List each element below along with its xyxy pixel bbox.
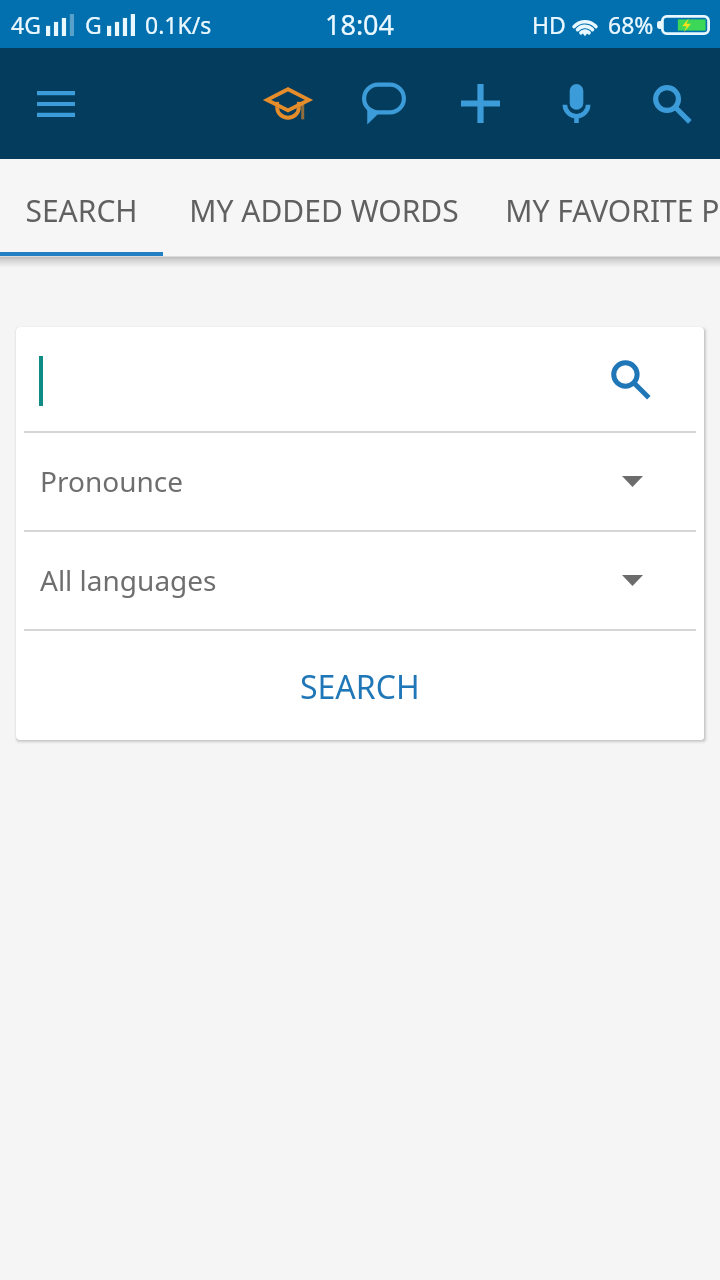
button[interactable]: SEARCH: [0, 159, 163, 256]
staticText: SEARCH: [300, 665, 420, 709]
staticText: MY FAVORITE PRONUNCIATIONS: [505, 190, 720, 231]
staticText: 68%: [608, 9, 654, 40]
button[interactable]: Add word: [432, 48, 528, 159]
button[interactable]: Voice search: [528, 48, 624, 159]
staticText: All languages: [40, 561, 217, 599]
button[interactable]: Messages: [336, 48, 432, 159]
staticText: Pronounce: [40, 462, 183, 500]
staticText: 4G: [11, 9, 41, 40]
button[interactable]: MY FAVORITE PRONUNCIATIONS: [484, 159, 720, 256]
button[interactable]: Search: [604, 353, 656, 405]
staticText: 0.1K/s: [145, 9, 212, 40]
button[interactable]: Menu: [12, 48, 100, 159]
button[interactable]: SEARCH: [16, 631, 704, 740]
button[interactable]: MY ADDED WORDS: [163, 159, 484, 256]
staticText: MY ADDED WORDS: [189, 190, 459, 231]
staticText: HD: [532, 9, 566, 40]
button[interactable]: All languages: [16, 532, 704, 629]
staticText: SEARCH: [25, 190, 138, 231]
staticText: 18:04: [325, 6, 395, 43]
button[interactable]: Search: [624, 48, 720, 159]
button[interactable]: Pronounce: [16, 433, 704, 530]
button[interactable]: Courses: [240, 48, 336, 159]
staticText: G: [85, 9, 102, 40]
